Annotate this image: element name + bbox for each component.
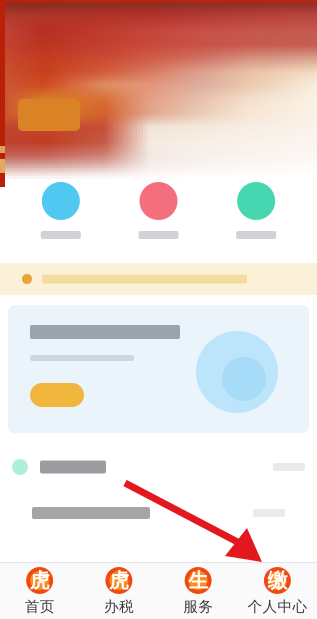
button[interactable]: 虎 [0,560,79,619]
staticText: 服务 [183,597,213,615]
staticText: 虎 [30,568,50,593]
button[interactable]: Item [0,491,317,535]
staticText: 缴 [267,568,287,593]
staticText: 首页 [25,597,55,615]
button[interactable]: Payment [207,182,305,239]
button[interactable]: 缴 [238,560,317,619]
button[interactable]: 虎 [79,560,158,619]
button[interactable]: 生 [158,560,238,619]
staticText: 生 [188,568,208,593]
button[interactable]: Notice [0,263,317,295]
button[interactable]: Declare [110,182,207,239]
staticText: 虎 [109,568,129,593]
button[interactable]: Section [0,443,317,491]
staticText: 办税 [104,597,134,615]
staticText: 个人中心 [247,597,307,615]
button[interactable]: Invoice [12,182,110,239]
button[interactable]: Promotion [0,295,317,433]
